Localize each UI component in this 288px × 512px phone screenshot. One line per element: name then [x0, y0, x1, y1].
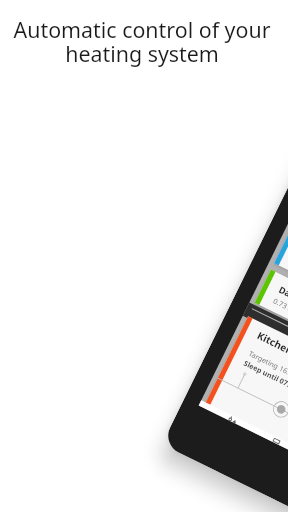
- staticText: Dad's Room: [277, 283, 288, 317]
- button[interactable]: Rooms: [265, 433, 287, 448]
- staticText: Automatic control of your heating system: [0, 15, 286, 68]
- button[interactable]: Dad's Room: [255, 270, 288, 394]
- staticText: Kitchen: [255, 328, 288, 358]
- staticText: 0.73 kWh today: [272, 295, 288, 328]
- staticText: Targeting 16.0° for now.: [247, 348, 288, 393]
- button[interactable]: Kitchen: [205, 316, 288, 495]
- button[interactable]: Lounge: [274, 231, 288, 355]
- button[interactable]: Home: [222, 412, 244, 427]
- staticText: Sleep until 07:00: [242, 358, 288, 393]
